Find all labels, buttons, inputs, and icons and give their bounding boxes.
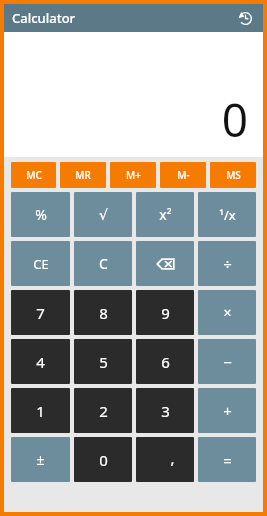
staticText: 5 (99, 352, 108, 372)
staticText: 2 (99, 401, 108, 421)
staticText: MC (26, 168, 42, 182)
button[interactable]: M+ (110, 162, 156, 188)
staticText: 1 (36, 401, 45, 421)
button[interactable]: 6 (136, 339, 194, 384)
button[interactable]: C (74, 241, 132, 286)
button[interactable]: 2 (74, 388, 132, 433)
button[interactable]: 0 (74, 437, 132, 482)
staticText: M- (177, 168, 190, 182)
staticText: % (35, 205, 47, 224)
button[interactable]: √ (74, 192, 132, 237)
staticText: M+ (126, 168, 141, 182)
button[interactable]: + (198, 388, 256, 433)
staticText: 8 (99, 303, 108, 323)
staticText: + (223, 401, 232, 421)
button[interactable]: − (198, 339, 256, 384)
button[interactable]: % (11, 192, 70, 237)
staticText: 0 (221, 88, 248, 151)
button[interactable]: ± (11, 437, 70, 482)
staticText: 3 (161, 401, 170, 421)
staticText: , (170, 448, 175, 468)
staticText: = (223, 450, 232, 470)
staticText: √ (99, 207, 108, 223)
staticText: MS (226, 168, 241, 182)
button[interactable]: x² (136, 192, 194, 237)
button[interactable]: 9 (136, 290, 194, 335)
button[interactable]: 4 (11, 339, 70, 384)
button[interactable]: , (136, 437, 194, 482)
button[interactable]: ¹/x (198, 192, 256, 237)
staticText: x² (159, 205, 172, 224)
button[interactable]: MR (60, 162, 106, 188)
button[interactable]: = (198, 437, 256, 482)
button[interactable]: 3 (136, 388, 194, 433)
button[interactable]: 1 (11, 388, 70, 433)
button[interactable]: 5 (74, 339, 132, 384)
staticText: Calculator (12, 9, 76, 27)
button[interactable]: CE (11, 241, 70, 286)
staticText: × (223, 303, 232, 322)
button[interactable]: MS (210, 162, 256, 188)
button[interactable]: ÷ (198, 241, 256, 286)
button[interactable]: History (234, 7, 256, 29)
button[interactable]: Backspace (136, 241, 194, 286)
staticText: 0 (99, 450, 108, 470)
staticText: 7 (36, 303, 45, 323)
staticText: ÷ (223, 254, 232, 274)
staticText: MR (75, 168, 91, 182)
staticText: CE (33, 255, 49, 273)
staticText: − (223, 352, 232, 372)
staticText: ¹/x (219, 206, 236, 224)
staticText: 4 (36, 352, 45, 372)
staticText: 6 (161, 352, 170, 372)
staticText: 9 (161, 303, 170, 323)
button[interactable]: × (198, 290, 256, 335)
button[interactable]: 8 (74, 290, 132, 335)
button[interactable]: M- (160, 162, 206, 188)
staticText: C (99, 254, 108, 273)
staticText: ± (36, 450, 45, 469)
button[interactable]: MC (11, 162, 56, 188)
button[interactable]: 7 (11, 290, 70, 335)
